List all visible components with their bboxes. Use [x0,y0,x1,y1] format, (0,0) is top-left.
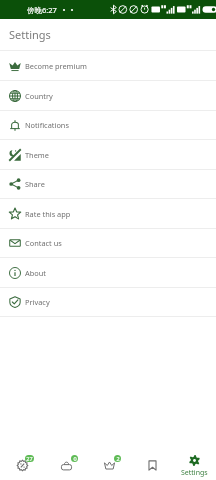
button[interactable]: Premium [87,444,130,480]
button[interactable]: Offers [0,444,44,480]
staticText: Country [25,91,53,101]
staticText: 0 [73,455,77,462]
button[interactable]: Become premium [0,51,216,80]
staticText: Theme [25,150,49,160]
button[interactable]: Notifications [0,110,216,139]
staticText: 2 [116,455,120,462]
button[interactable]: About [0,258,216,287]
staticText: Privacy [25,297,50,307]
staticText: Settings [9,27,51,42]
button[interactable]: Theme [0,140,216,169]
staticText: 傍晚6:27 [27,5,57,15]
staticText: Notifications [25,120,69,130]
button[interactable]: Settings [173,444,216,480]
staticText: Settings [181,468,208,478]
button[interactable]: Cart [44,444,87,480]
staticText: About [25,268,46,278]
button[interactable]: Contact us [0,228,216,257]
staticText: 27 [26,455,33,462]
staticText: Become premium [25,61,87,71]
staticText: Contact us [25,238,62,248]
button[interactable]: Bookmarks [130,444,173,480]
button[interactable]: Privacy [0,287,216,316]
button[interactable]: Rate this app [0,199,216,228]
staticText: Rate this app [25,209,71,219]
button[interactable]: Country [0,81,216,110]
staticText: Share [25,179,45,189]
button[interactable]: Share [0,169,216,198]
